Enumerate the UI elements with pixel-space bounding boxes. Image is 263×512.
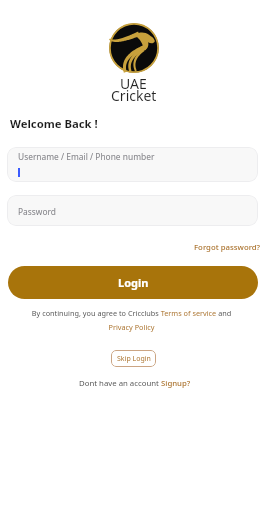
button[interactable]: Signup? bbox=[161, 378, 191, 389]
other: UAE Cricket logo bbox=[109, 23, 159, 73]
button[interactable]: Skip Login bbox=[111, 350, 156, 367]
button[interactable]: Username / Email / Phone number bbox=[7, 147, 258, 182]
staticText: Skip Login bbox=[117, 354, 151, 364]
staticText: Password bbox=[18, 206, 56, 217]
staticText: Cricket bbox=[111, 86, 157, 105]
button[interactable]: Password bbox=[7, 195, 258, 226]
button[interactable]: Forgot password? bbox=[188, 240, 263, 255]
button[interactable]: Login bbox=[8, 266, 258, 299]
staticText: Dont have an account bbox=[79, 378, 161, 389]
staticText: Signup? bbox=[161, 378, 191, 389]
staticText: Welcome Back ! bbox=[10, 116, 98, 131]
staticText: Forgot password? bbox=[194, 242, 261, 253]
staticText: Username / Email / Phone number bbox=[18, 151, 155, 162]
staticText: By continuing, you agree to Cricclubs Te… bbox=[26, 308, 237, 332]
staticText: UAE bbox=[120, 74, 147, 93]
staticText: Login bbox=[118, 275, 149, 290]
